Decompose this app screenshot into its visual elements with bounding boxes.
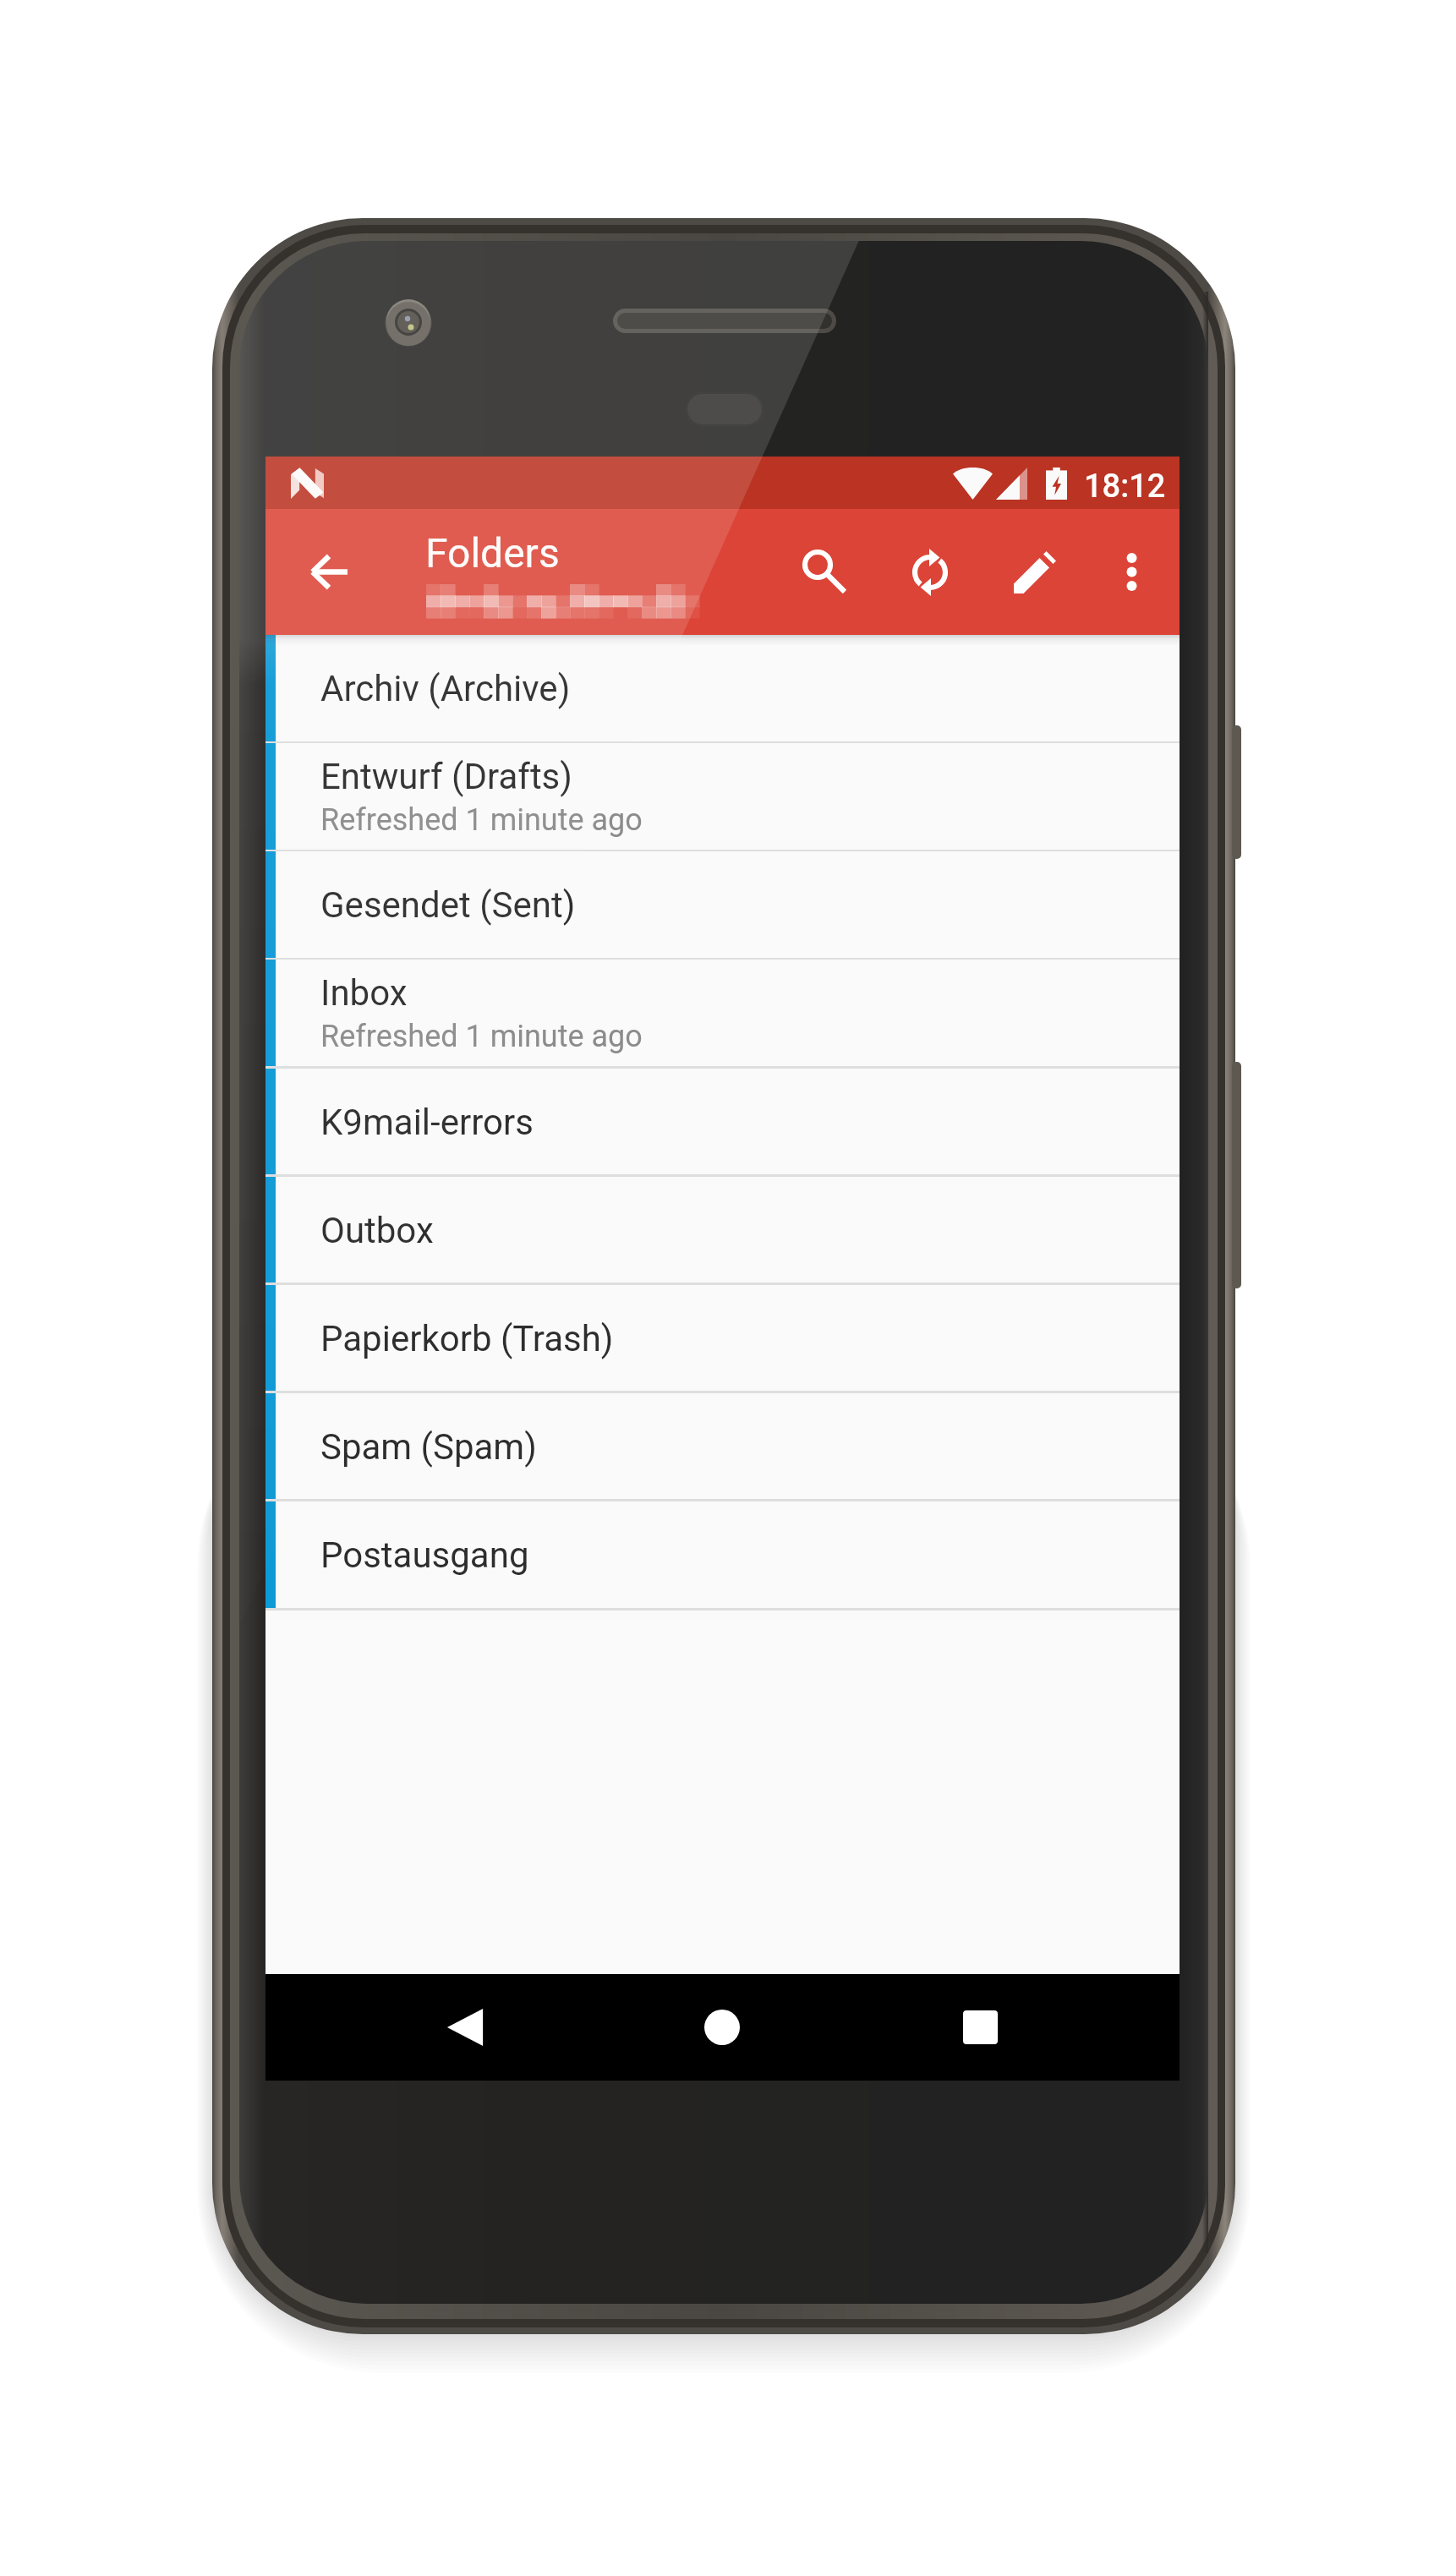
- button[interactable]: Archiv (Archive): [265, 635, 1180, 741]
- button[interactable]: Gesendet (Sent): [265, 851, 1180, 958]
- button[interactable]: Postausgang: [265, 1501, 1180, 1608]
- staticText: 18:12: [1084, 468, 1166, 506]
- button[interactable]: Navigate up: [275, 519, 383, 625]
- staticText: Postausgang: [320, 1534, 529, 1576]
- button[interactable]: Search: [773, 519, 878, 625]
- staticText: Papierkorb (Trash): [320, 1318, 614, 1359]
- staticText: Refreshed 1 minute ago: [320, 1019, 643, 1054]
- button[interactable]: More options: [1079, 519, 1184, 625]
- staticText: Inbox: [320, 972, 408, 1014]
- button[interactable]: Spam (Spam): [265, 1393, 1180, 1500]
- button[interactable]: Papierkorb (Trash): [265, 1285, 1180, 1392]
- button[interactable]: Entwurf (Drafts): [265, 743, 1180, 850]
- button[interactable]: Recent apps: [929, 1977, 1031, 2078]
- staticText: Archiv (Archive): [320, 668, 571, 709]
- staticText: Spam (Spam): [320, 1426, 537, 1468]
- staticText: Entwurf (Drafts): [320, 756, 572, 797]
- button[interactable]: Home: [671, 1977, 773, 2078]
- staticText: Refreshed 1 minute ago: [320, 802, 643, 838]
- button[interactable]: Inbox: [265, 960, 1180, 1066]
- button[interactable]: Refresh: [879, 519, 983, 625]
- staticText: Gesendet (Sent): [320, 884, 576, 926]
- button[interactable]: Outbox: [265, 1177, 1180, 1283]
- staticText: K9mail-errors: [320, 1102, 534, 1143]
- staticText: Folders: [425, 529, 560, 577]
- button[interactable]: K9mail-errors: [265, 1069, 1180, 1175]
- staticText: Outbox: [320, 1210, 434, 1251]
- button[interactable]: Compose message: [983, 519, 1088, 625]
- button[interactable]: Back: [414, 1977, 516, 2078]
